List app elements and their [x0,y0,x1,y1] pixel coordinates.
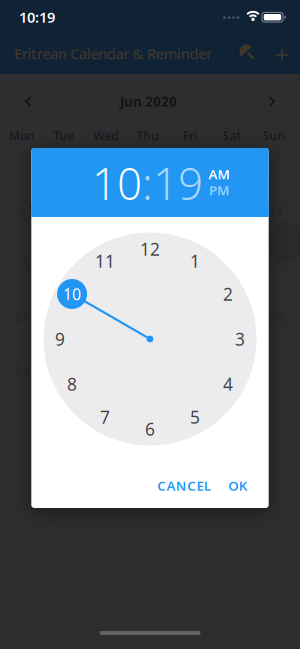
staticText: : [142,154,153,212]
staticText: 1 [190,249,200,272]
button[interactable]: OK [220,468,256,503]
staticText: 10 [63,283,81,305]
staticText: PM [209,181,229,199]
staticText: CANCEL [157,477,211,494]
staticText: 10 [92,154,142,212]
staticText: 10:19 [19,7,55,27]
staticText: 12 [140,237,160,260]
staticText: 5 [190,405,200,428]
staticText: 8 [67,372,77,395]
button[interactable]: Next month [263,94,278,109]
staticText: AM [208,165,229,183]
staticText: Sat [222,127,241,143]
staticText: 7 [100,405,110,428]
staticText: Sun [262,127,285,143]
staticText: 28 [269,309,283,325]
staticText: Mon [9,127,35,143]
button[interactable]: Previous month [21,94,36,109]
button[interactable]: Add reminder [267,40,297,70]
staticText: Eritrean Calendar & Reminder [14,44,212,63]
staticText: Jun 2020 [120,93,177,110]
staticText: Tue [53,127,74,143]
staticText: 14 [269,203,283,219]
button[interactable]: Select minutes [153,154,203,212]
staticText: 6 [145,417,155,440]
staticText: 3 [235,327,245,350]
staticText: OK [228,477,248,494]
staticText: Thu [136,127,159,143]
button[interactable]: Select hours [92,154,142,212]
staticText: 4 [223,372,233,395]
staticText: 19 [153,154,203,212]
staticText: Fri [183,127,197,143]
staticText: 9 [55,327,65,350]
button[interactable]: AM [206,163,231,185]
button[interactable]: Hide reminders [233,39,263,69]
button[interactable]: PM [207,179,231,201]
staticText: 21 [269,256,283,272]
button[interactable]: CANCEL [149,468,219,503]
staticText: 11 [95,249,115,272]
staticText: 2 [223,282,233,305]
staticText: Wed [93,127,118,143]
